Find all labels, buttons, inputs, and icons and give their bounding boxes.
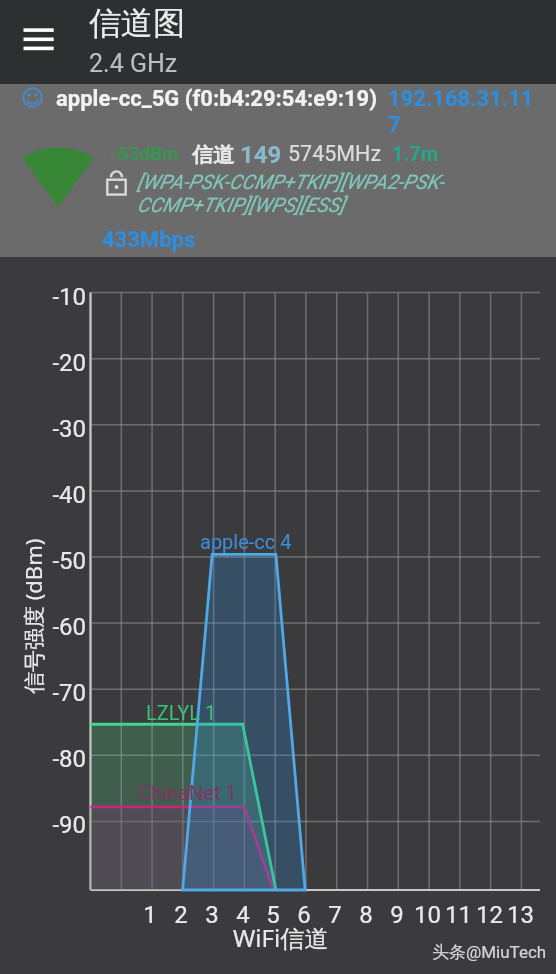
staticText: 2.4 GHz xyxy=(89,49,178,78)
staticText: 433Mbps xyxy=(102,227,196,253)
staticText: 信道 xyxy=(192,142,234,168)
button[interactable]: apple-cc_5G (f0:b4:29:54:e9:19) xyxy=(0,84,556,257)
staticText: 192.168.31.117 xyxy=(388,86,538,138)
staticText: 149 xyxy=(240,141,282,169)
staticText: 信号强度 (dBm) xyxy=(18,538,48,694)
button[interactable]: Open navigation menu xyxy=(10,12,68,58)
staticText: -50 xyxy=(52,547,86,575)
staticText: apple-cc 4 xyxy=(200,530,292,553)
staticText: ChinaNet 1 xyxy=(138,781,237,804)
staticText: 5 xyxy=(266,901,280,929)
staticText: 信道图 xyxy=(89,3,185,43)
staticText: -90 xyxy=(52,811,86,839)
staticText: 10 xyxy=(414,901,441,929)
staticText: -10 xyxy=(52,283,86,311)
staticText: -20 xyxy=(52,349,86,377)
staticText: 11 xyxy=(445,901,472,929)
staticText: -53dBm xyxy=(110,142,179,164)
staticText: -60 xyxy=(52,613,86,641)
staticText: apple-cc_5G (f0:b4:29:54:e9:19) xyxy=(56,86,377,112)
staticText: -40 xyxy=(52,481,86,509)
staticText: 9 xyxy=(390,901,404,929)
staticText: 2 xyxy=(174,901,188,929)
staticText: -70 xyxy=(52,679,86,707)
staticText: 1 xyxy=(143,901,157,929)
staticText: 3 xyxy=(205,901,219,929)
staticText: 6 xyxy=(297,901,311,929)
staticText: -30 xyxy=(52,415,86,443)
staticText: LZLYL 1 xyxy=(146,701,217,724)
staticText: 7 xyxy=(328,901,342,929)
staticText: 1.7m xyxy=(392,142,439,165)
staticText: 12 xyxy=(476,901,503,929)
staticText: [WPA-PSK-CCMP+TKIP][WPA2-PSK-CCMP+TKIP][… xyxy=(137,170,493,216)
staticText: 5745MHz xyxy=(288,141,382,166)
staticText: -80 xyxy=(52,745,86,773)
staticText: 4 xyxy=(236,901,250,929)
staticText: 8 xyxy=(359,901,373,929)
staticText: 13 xyxy=(507,901,534,929)
staticText: 头条@MiuTech xyxy=(432,942,547,963)
staticText: WiFi信道 xyxy=(233,921,329,951)
